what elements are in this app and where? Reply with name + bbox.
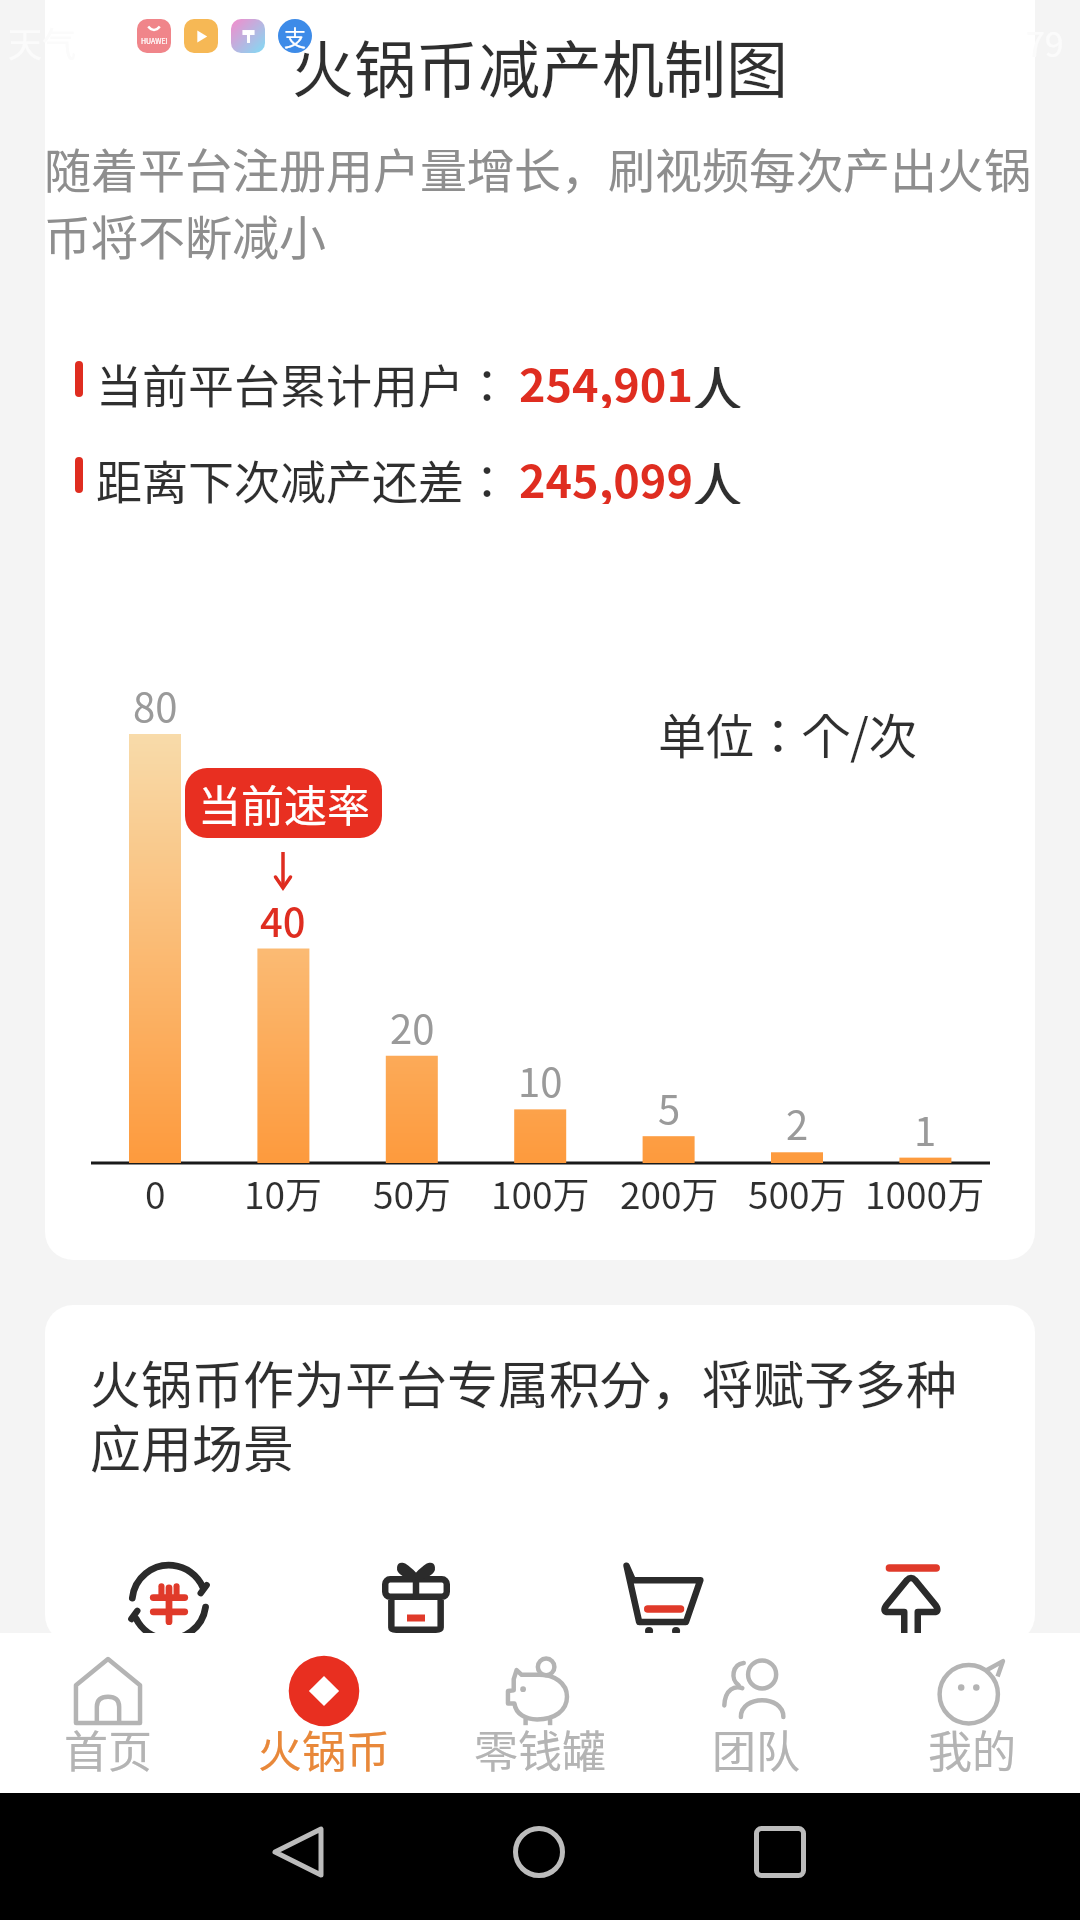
staticText: 500万 [748,1166,847,1220]
staticText: 80 [133,676,178,734]
staticText: 火锅币 [258,1717,390,1781]
staticText: 10 [518,1051,563,1109]
staticText: 10万 [244,1166,323,1220]
staticText: 团队 [712,1717,800,1781]
staticText: 人 [693,446,743,504]
staticText: 火锅币作为平台专属积分，将赋予多种应用场景 [90,1345,982,1483]
staticText: 首页 [64,1717,152,1781]
staticText: 当前平台累计用户： [96,350,510,408]
button[interactable]: Back [238,1792,358,1912]
button[interactable]: 当前速率 [185,768,382,838]
button[interactable]: Home [479,1792,599,1912]
button[interactable]: 首页 [0,1633,216,1793]
staticText: 当前速率 [198,772,370,834]
staticText: 245,099 [519,446,693,504]
staticText: 单位：个/次 [658,698,917,768]
staticText: 人 [693,350,743,408]
staticText: 50万 [373,1166,452,1220]
button[interactable]: 购物 [539,1550,787,1643]
staticText: 1 [914,1100,937,1158]
button[interactable]: 零钱罐 [432,1633,648,1793]
staticText: 20 [390,998,435,1056]
staticText: 支 [284,20,307,52]
staticText: 40 [260,891,306,949]
staticText: HUAWEI [141,36,168,46]
staticText: 我的 [928,1717,1016,1781]
staticText: 火锅币减产机制图 [45,21,1035,111]
button[interactable]: 火锅币 [216,1633,432,1793]
staticText: 5 [658,1078,681,1136]
staticText: 1000万 [865,1166,985,1220]
staticText: 254,901 [519,350,693,408]
staticText: 100万 [491,1166,590,1220]
staticText: 天气 [8,18,76,67]
staticText: 200万 [620,1166,719,1220]
button[interactable]: 提现 [787,1550,1035,1643]
button[interactable]: 礼品 [292,1550,539,1643]
button[interactable]: 兑换 [45,1550,292,1643]
staticText: 随着平台注册用户量增长，刷视频每次产出火锅币将不断减小 [45,133,1034,268]
staticText: 零钱罐 [474,1717,606,1781]
button[interactable]: 我的 [864,1633,1080,1793]
staticText: 2 [786,1094,809,1152]
staticText: 距离下次减产还差： [96,446,510,504]
staticText: 0 [145,1166,166,1220]
button[interactable]: Recents [720,1792,840,1912]
button[interactable]: 团队 [648,1633,864,1793]
staticText: 79 [1026,18,1064,67]
